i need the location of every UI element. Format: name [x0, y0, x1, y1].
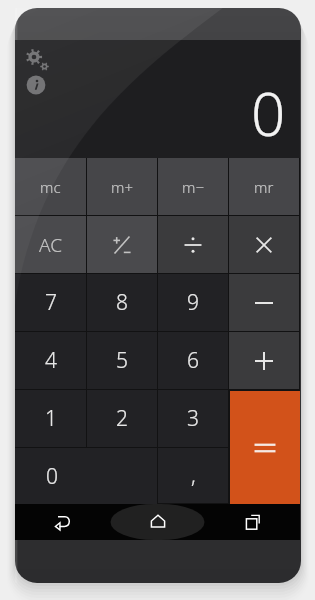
button[interactable]: 1 [15, 390, 86, 447]
staticText: mc [40, 177, 61, 197]
button[interactable]: Minus [229, 274, 299, 331]
staticText: 2 [116, 404, 128, 433]
button[interactable]: , [158, 448, 228, 503]
staticText: 0 [251, 72, 286, 154]
staticText: mr [254, 177, 274, 197]
staticText: 3 [187, 404, 199, 433]
button[interactable]: 4 [15, 332, 86, 389]
button[interactable]: m− [158, 158, 228, 215]
button[interactable]: Info [22, 72, 52, 102]
button[interactable]: mr [229, 158, 299, 215]
staticText: AC [39, 232, 63, 258]
button[interactable]: mc [15, 158, 86, 215]
staticText: 0 [46, 462, 58, 491]
button[interactable]: Settings [19, 41, 53, 75]
button[interactable]: 8 [87, 274, 157, 331]
button[interactable]: 5 [87, 332, 157, 389]
staticText: m+ [111, 177, 133, 197]
staticText: m− [182, 177, 204, 197]
staticText: 5 [116, 346, 128, 375]
staticText: 9 [187, 288, 199, 317]
button[interactable]: Plus [229, 332, 299, 389]
button[interactable]: 7 [15, 274, 86, 331]
staticText: 8 [116, 288, 128, 317]
button[interactable]: Divide [158, 216, 228, 273]
staticText: 1 [45, 404, 57, 433]
button[interactable]: 0 [15, 448, 157, 504]
staticText: 7 [45, 288, 57, 317]
staticText: , [191, 461, 196, 490]
button[interactable]: Equals [230, 391, 300, 504]
button[interactable]: Multiply [229, 216, 299, 273]
button[interactable]: 2 [87, 390, 157, 447]
staticText: 4 [45, 346, 57, 375]
button[interactable]: AC [15, 216, 86, 273]
button[interactable]: m+ [87, 158, 157, 215]
button[interactable]: Back [15, 504, 110, 540]
button[interactable]: 9 [158, 274, 228, 331]
button[interactable]: 6 [158, 332, 228, 389]
button[interactable]: 3 [158, 390, 228, 447]
staticText: 6 [187, 346, 199, 375]
button[interactable]: Home [110, 504, 205, 540]
button[interactable]: Plus minus [87, 216, 157, 273]
button[interactable]: Recents [205, 504, 300, 540]
